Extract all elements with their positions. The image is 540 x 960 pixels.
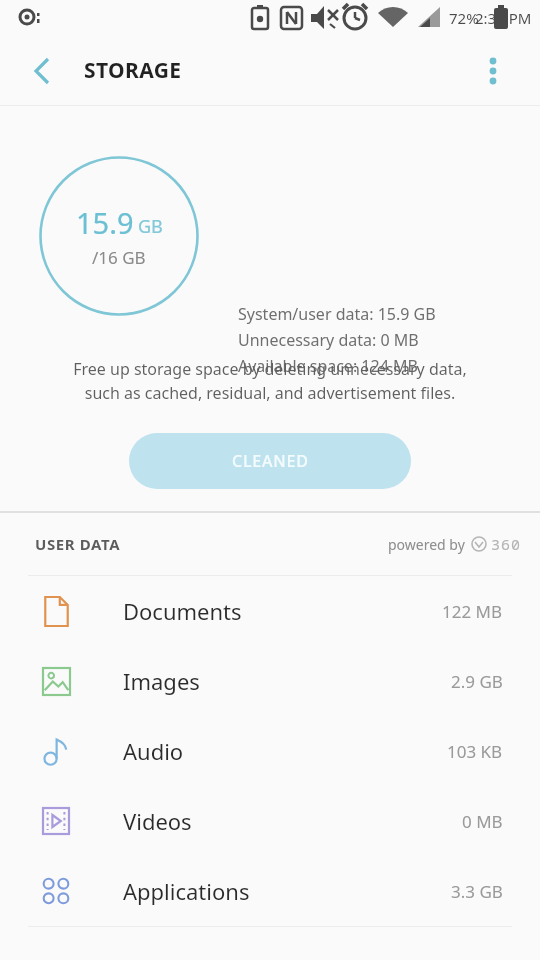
staticText: Applications bbox=[123, 876, 250, 906]
staticText: GB bbox=[138, 214, 163, 239]
button[interactable]: Documents bbox=[0, 576, 540, 646]
staticText: 360 bbox=[491, 534, 522, 554]
staticText: STORAGE bbox=[84, 56, 182, 85]
staticText: 3.3 GB bbox=[451, 880, 503, 903]
button[interactable]: Images bbox=[0, 646, 540, 716]
staticText: CLEANED bbox=[232, 450, 309, 472]
button[interactable]: Audio bbox=[0, 716, 540, 786]
staticText: powered by bbox=[388, 535, 465, 554]
button[interactable]: CLEANED bbox=[129, 433, 411, 489]
staticText: Free up storage space by deleting unnece… bbox=[20, 358, 520, 404]
staticText: System/user data: 15.9 GB bbox=[238, 303, 436, 325]
button[interactable]: Videos bbox=[0, 786, 540, 856]
staticText: Videos bbox=[123, 806, 192, 836]
staticText: USER DATA bbox=[35, 534, 121, 554]
staticText: 2.9 GB bbox=[451, 670, 503, 693]
button[interactable]: Applications bbox=[0, 856, 540, 926]
staticText: Documents bbox=[123, 596, 242, 626]
staticText: 0 MB bbox=[462, 810, 503, 833]
staticText: Images bbox=[123, 666, 200, 696]
staticText: Audio bbox=[123, 736, 184, 766]
staticText: 15.9 bbox=[76, 203, 134, 242]
staticText: 72% bbox=[449, 8, 479, 28]
staticText: 103 KB bbox=[447, 740, 503, 763]
staticText: 122 MB bbox=[442, 600, 503, 623]
button[interactable]: Back bbox=[18, 47, 66, 95]
staticText: Unnecessary data: 0 MB bbox=[238, 329, 419, 351]
staticText: 2:38 PM bbox=[475, 8, 532, 28]
button[interactable]: More options bbox=[471, 49, 515, 93]
staticText: Available space: 124 MB bbox=[238, 355, 418, 377]
staticText: /16 GB bbox=[92, 246, 146, 269]
